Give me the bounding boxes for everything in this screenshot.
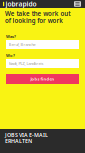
staticText: Was? [6, 34, 16, 39]
button[interactable]: JOBS VIA E-MAIL [0, 129, 85, 153]
staticText: Wo? [6, 53, 15, 58]
staticText: ERHALTEN [5, 137, 32, 145]
button[interactable]: Jobs finden [5, 74, 79, 84]
staticText: Stadt, PLZ, Landkreis [8, 61, 43, 66]
button[interactable]: Menu [72, 0, 85, 8]
button[interactable]: Beruf, Branche [5, 40, 79, 49]
staticText: JOBS VIA E-MAIL [5, 131, 48, 139]
staticText: We take the work out [5, 9, 70, 18]
staticText: of looking for work [5, 16, 63, 25]
staticText: jobrapido [5, 0, 36, 8]
button[interactable]: Stadt, PLZ, Landkreis [5, 59, 79, 68]
staticText: Beruf, Branche [8, 42, 35, 47]
staticText: Jobs finden [30, 76, 54, 82]
button[interactable]: Jobrapido home [0, 0, 36, 8]
